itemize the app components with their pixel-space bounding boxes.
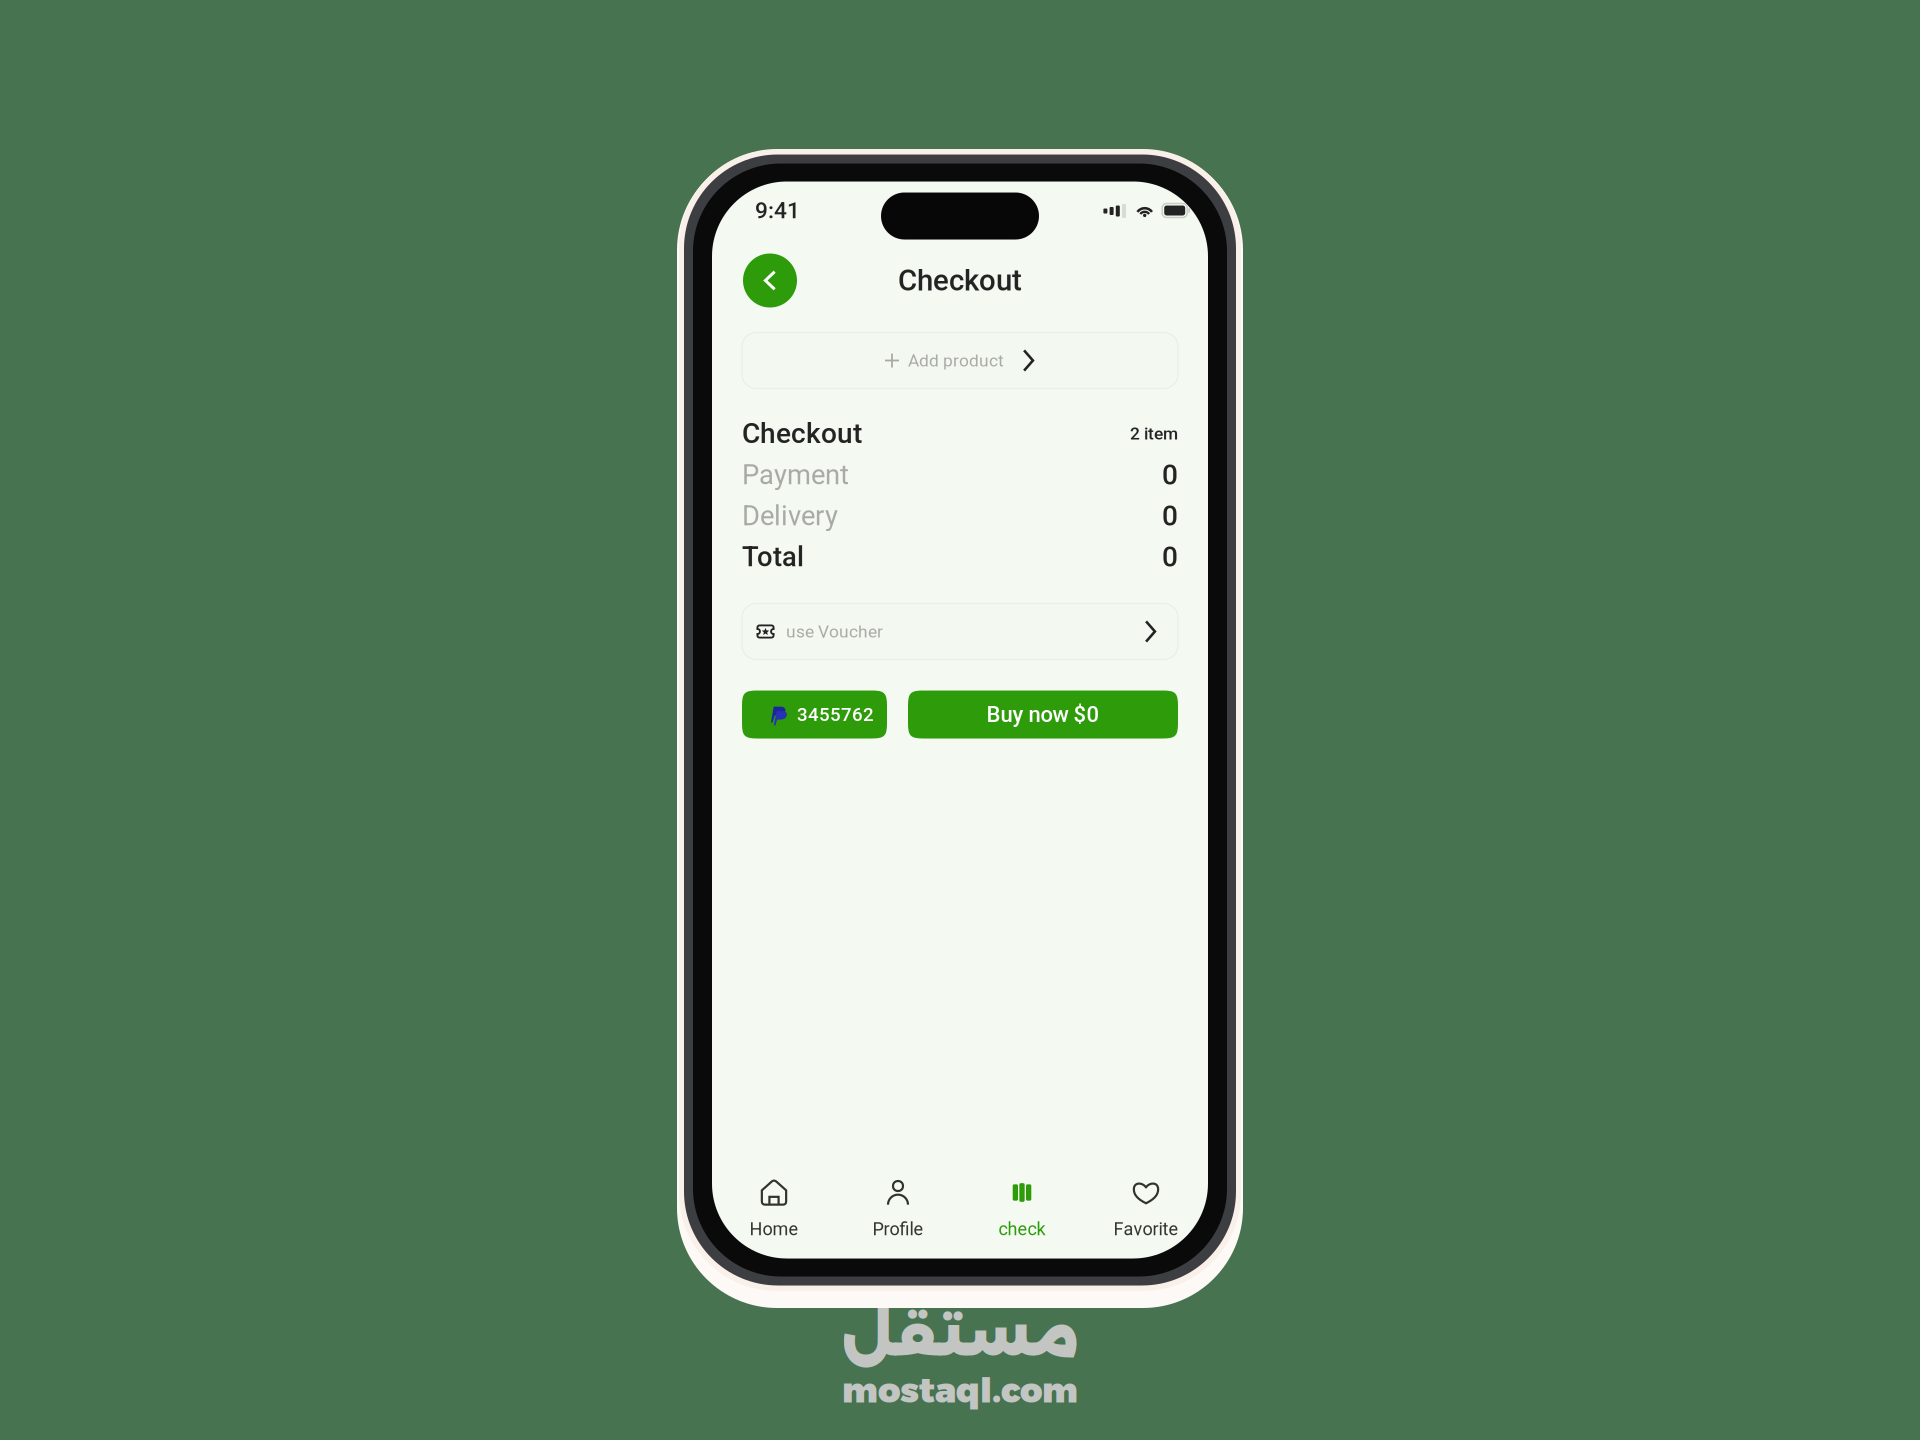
staticText: Checkout (898, 263, 1022, 298)
staticText: Buy now $0 (986, 702, 1099, 727)
button[interactable]: check (960, 1178, 1084, 1238)
staticText: Home (749, 1218, 798, 1240)
button[interactable]: Back (743, 253, 797, 307)
staticText: Delivery (742, 500, 838, 532)
staticText: 3455762 (797, 704, 874, 725)
staticText: mostaql.com (842, 1369, 1078, 1411)
button[interactable]: Favorite (1084, 1178, 1208, 1238)
staticText: 0 (1162, 541, 1178, 573)
staticText: 9:41 (755, 197, 800, 224)
button[interactable]: Home (712, 1178, 836, 1238)
staticText: 0 (1162, 500, 1178, 532)
staticText: Payment (742, 459, 849, 491)
button[interactable]: Profile (836, 1178, 960, 1238)
staticText: مستقل (841, 1300, 1079, 1370)
staticText: Checkout (742, 417, 862, 450)
button[interactable]: Buy now $0 (908, 690, 1178, 738)
staticText: Favorite (1113, 1218, 1178, 1240)
button[interactable]: use Voucher (742, 603, 1178, 659)
staticText: Total (742, 541, 804, 573)
staticText: 0 (1162, 459, 1178, 491)
staticText: Add product (908, 350, 1004, 371)
staticText: Profile (872, 1218, 923, 1240)
button[interactable]: 3455762 (742, 690, 887, 738)
staticText: use Voucher (786, 621, 883, 642)
staticText: check (998, 1218, 1045, 1240)
button[interactable]: Add product (742, 332, 1178, 388)
staticText: 2 item (1130, 423, 1178, 444)
